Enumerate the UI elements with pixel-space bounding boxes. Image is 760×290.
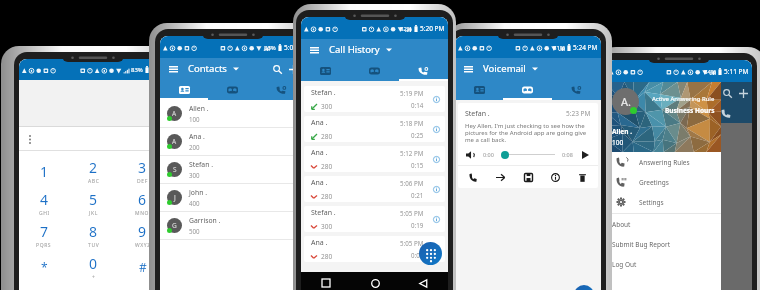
button[interactable]: 1 [19,155,69,187]
button[interactable]: 7 [19,219,69,251]
button[interactable]: Open navigation menu [167,63,179,75]
button[interactable]: 3 [118,155,167,187]
staticText: Active Answering Rule [652,95,715,103]
staticText: Ana . [311,148,328,158]
staticText: 0:08 [562,151,573,158]
button[interactable]: Call details [431,124,442,135]
button[interactable]: Call details [431,94,442,105]
button[interactable]: Search [269,61,285,77]
button[interactable]: Recent apps [319,276,333,290]
button[interactable]: Open navigation menu [308,44,320,56]
button[interactable]: Ana . [304,116,445,142]
staticText: 100 [189,115,200,123]
button[interactable]: Add [735,85,751,101]
button[interactable]: Speaker [465,149,476,160]
staticText: Settings [639,198,664,207]
button[interactable]: Play [580,149,591,160]
button[interactable]: Stefan . [304,86,445,112]
staticText: 300 [189,171,200,179]
staticText: 280 [321,132,333,141]
button[interactable]: Call details [431,184,442,195]
staticText: 400 [189,199,200,207]
button[interactable]: G [160,212,306,239]
button[interactable]: 0 [69,251,118,283]
staticText: Contacts [188,62,227,75]
button[interactable]: Forward [494,171,507,184]
button[interactable]: Search [719,85,735,101]
button[interactable]: Voicemail tab [350,60,399,81]
button[interactable]: 2 [69,155,118,187]
button[interactable]: Open dial pad [419,242,442,265]
button[interactable]: Log Out [606,254,721,274]
button[interactable]: Contacts tab [301,60,350,81]
button[interactable]: Open dial pad [574,285,594,290]
button[interactable]: Voicemail tab [503,79,552,100]
staticText: 2 [89,158,98,177]
button[interactable]: Home [368,276,382,290]
button[interactable]: Call history tab [257,79,306,100]
button[interactable]: 6 [118,187,167,219]
button[interactable]: Add [285,61,301,77]
button[interactable]: Call details [431,214,442,225]
button[interactable]: 9 [118,219,167,251]
button[interactable]: Settings [606,192,721,212]
button[interactable]: 5 [69,187,118,219]
staticText: J [174,193,176,202]
button[interactable]: About [606,214,721,234]
button[interactable]: S [160,156,306,183]
button[interactable]: A [160,128,306,155]
staticText: 5:05 PM [400,239,424,247]
staticText: 81% [553,44,565,52]
staticText: 5:19 PM [400,89,424,97]
staticText: Stefan . [311,88,336,98]
staticText: 280 [321,252,333,261]
staticText: 500 [189,227,200,235]
button[interactable]: Stefan . [304,206,445,232]
button[interactable]: Call history tab [552,79,601,100]
staticText: 0:00 [483,151,494,158]
staticText: 0:15 [411,161,424,169]
staticText: * [41,259,48,275]
button[interactable]: Save [522,171,535,184]
staticText: 84% [704,68,716,76]
button[interactable]: Ana . [304,236,445,262]
staticText: 0:25 [411,131,424,139]
staticText: 300 [321,222,333,231]
button[interactable]: Call history tab [721,109,732,118]
button[interactable]: Call history tab [399,60,448,81]
button[interactable]: Details [549,171,562,184]
button[interactable]: * [19,251,69,283]
button[interactable]: Delete [576,171,589,184]
button[interactable]: Ana . [304,176,445,202]
staticText: Ana . [189,132,205,141]
staticText: Voicemail [483,62,526,75]
button[interactable]: Ana . [304,146,445,172]
button[interactable]: Contacts tab [455,79,503,100]
button[interactable]: 4 [19,187,69,219]
staticText: WXYZ [135,242,151,249]
button[interactable]: Open dial pad [295,286,306,290]
staticText: 5:24 PM [573,43,598,52]
button[interactable]: # [118,251,167,283]
button[interactable]: Back [416,276,430,290]
button[interactable]: Contacts tab [160,79,208,100]
button[interactable]: More options [23,132,37,146]
staticText: 7 [40,222,49,241]
button[interactable]: Voicemail tab [208,79,257,100]
staticText: 5:18 PM [400,119,424,127]
staticText: Ana . [311,238,328,248]
button[interactable]: 8 [69,219,118,251]
button[interactable]: Call details [431,154,442,165]
button[interactable]: Submit Bug Report [606,234,721,254]
button[interactable]: Answering Rules [606,152,721,172]
staticText: Answering Rules [639,158,690,167]
button[interactable]: A [160,100,306,127]
staticText: Greetings [639,178,669,187]
button[interactable]: Call back [467,171,480,184]
button[interactable]: Open navigation menu [462,63,474,75]
staticText: 5:11 PM [724,67,749,76]
staticText: 300 [321,102,333,111]
button[interactable]: Call details [431,244,442,255]
button[interactable]: Greetings [606,172,721,192]
button[interactable]: J [160,184,306,211]
